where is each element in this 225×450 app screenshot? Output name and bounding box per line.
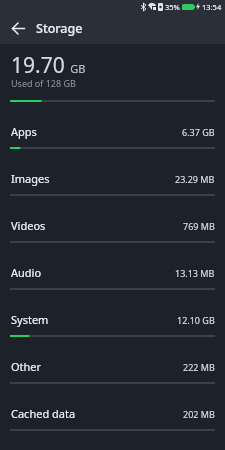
- button[interactable]: Images: [0, 154, 225, 201]
- staticText: Apps: [11, 124, 37, 139]
- staticText: Images: [11, 171, 50, 186]
- button[interactable]: System: [0, 295, 225, 342]
- button[interactable]: Other: [0, 342, 225, 389]
- button[interactable]: Videos: [0, 201, 225, 248]
- staticText: 13:54: [202, 2, 222, 12]
- button[interactable]: Audio: [0, 248, 225, 295]
- button[interactable]: Cached data: [0, 389, 225, 436]
- staticText: 19.70 GB: [11, 51, 86, 80]
- staticText: Videos: [11, 218, 46, 233]
- staticText: 202 MB: [183, 408, 215, 420]
- staticText: System: [11, 312, 49, 327]
- staticText: 23.29 MB: [175, 173, 215, 185]
- button[interactable]: Apps: [0, 107, 225, 154]
- staticText: Storage: [36, 20, 83, 37]
- button[interactable]: [0, 13, 36, 44]
- staticText: 6.37 GB: [182, 126, 215, 138]
- staticText: Other: [11, 359, 42, 374]
- staticText: 12.10 GB: [177, 314, 215, 326]
- staticText: 13.13 MB: [175, 267, 215, 279]
- staticText: Audio: [11, 265, 42, 280]
- staticText: 769 MB: [183, 220, 215, 232]
- staticText: Used of 128 GB: [11, 77, 76, 89]
- staticText: 35%: [165, 2, 180, 12]
- staticText: Cached data: [11, 406, 76, 421]
- staticText: 222 MB: [183, 361, 215, 373]
